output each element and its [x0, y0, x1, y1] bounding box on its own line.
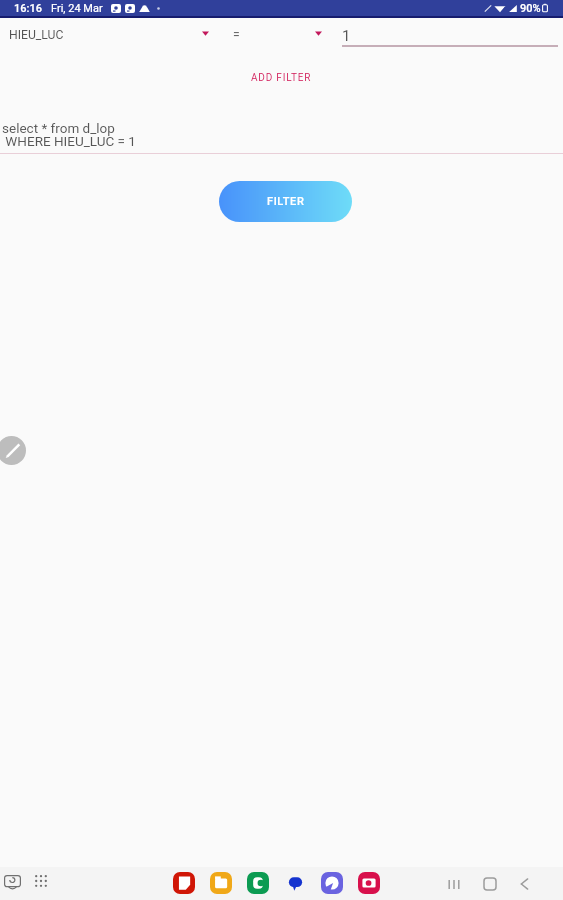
staticText: WHERE HIEU_LUC = 1 — [2, 133, 136, 149]
staticText: 1 — [342, 27, 351, 45]
button[interactable]: Edit — [0, 436, 26, 465]
button[interactable]: Smart capture — [2, 872, 22, 892]
button[interactable]: My Files — [210, 872, 232, 894]
staticText: FILTER — [267, 195, 305, 208]
button[interactable]: Recent apps — [443, 873, 465, 895]
button[interactable]: = — [222, 18, 332, 48]
staticText: ADD FILTER — [251, 72, 312, 84]
staticText: 16:16 — [14, 2, 42, 15]
staticText: select * from d_lop — [2, 120, 115, 136]
staticText: = — [233, 28, 240, 42]
button[interactable]: ADD FILTER — [239, 67, 324, 89]
button[interactable]: All apps — [33, 873, 49, 889]
button[interactable]: HIEU_LUC — [0, 18, 218, 48]
button[interactable]: Back — [513, 873, 535, 895]
button[interactable]: Phone — [247, 872, 269, 894]
button[interactable]: Internet — [321, 872, 343, 894]
staticText: 90% — [520, 2, 541, 15]
button[interactable]: FILTER — [219, 181, 352, 222]
button[interactable]: Camera — [358, 872, 380, 894]
button[interactable]: Messages — [284, 872, 306, 894]
button[interactable]: Notes — [173, 872, 195, 894]
button[interactable]: Home — [479, 873, 501, 895]
staticText: Fri, 24 Mar — [51, 2, 103, 15]
staticText: HIEU_LUC — [9, 28, 64, 42]
button[interactable]: 1 — [339, 18, 563, 48]
